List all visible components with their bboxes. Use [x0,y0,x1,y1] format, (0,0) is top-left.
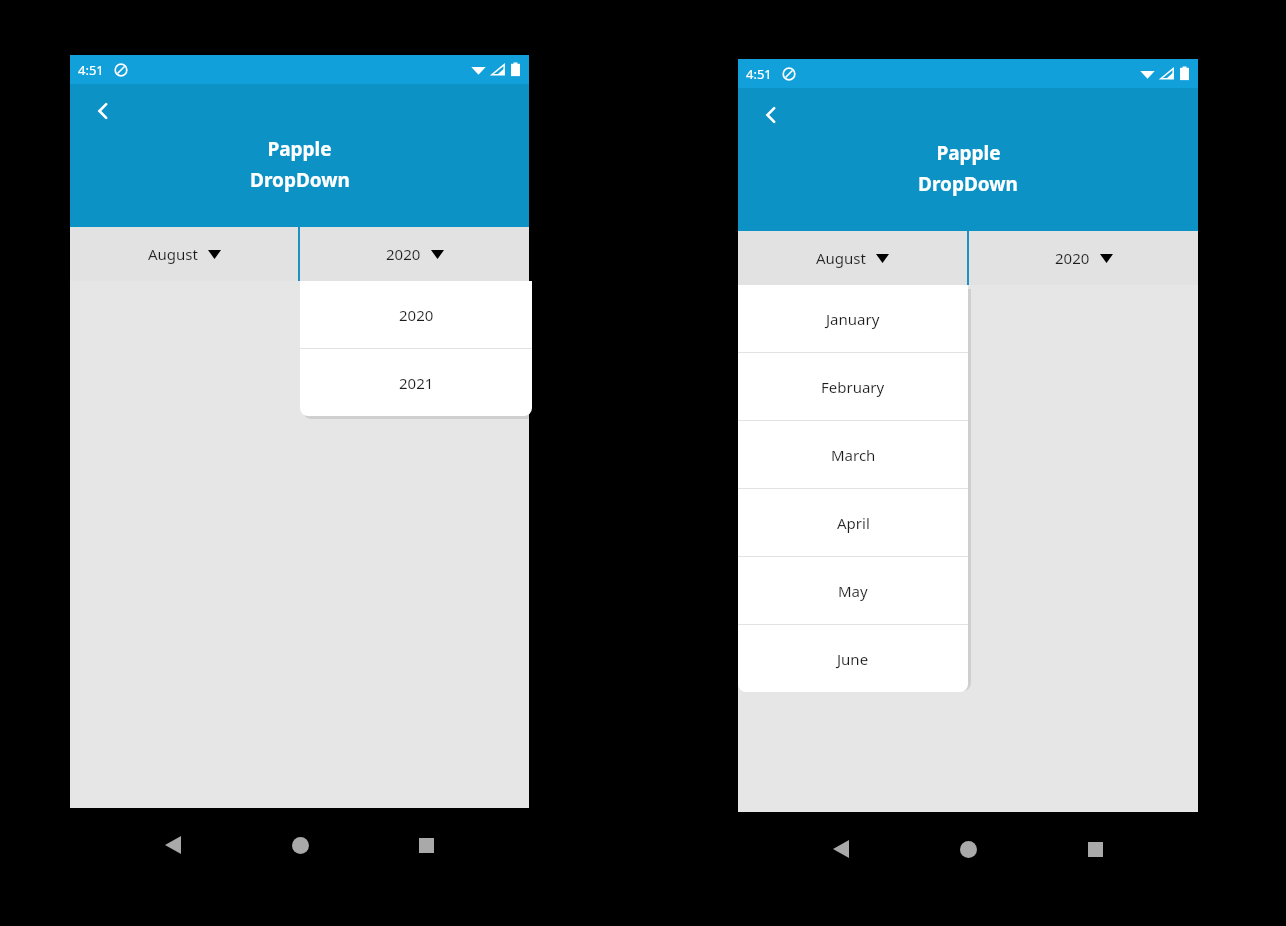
button[interactable]: Home [944,825,992,873]
button[interactable]: Back [149,821,197,869]
button[interactable]: August [738,231,967,285]
staticText: 2020 [386,244,421,264]
staticText: DropDown [250,167,350,193]
staticText: June [837,649,869,669]
staticText: May [838,581,868,601]
staticText: April [837,513,870,533]
staticText: 2021 [399,373,434,393]
staticText: 2020 [1055,248,1090,268]
staticText: March [831,445,876,465]
button[interactable]: Back [82,90,124,132]
button[interactable]: April [738,489,968,556]
staticText: August [816,248,866,268]
staticText: August [148,244,198,264]
staticText: January [826,309,880,329]
button[interactable]: 2021 [300,349,532,416]
button[interactable]: February [738,353,968,420]
button[interactable]: August [70,227,298,281]
button[interactable]: 2020 [969,231,1198,285]
staticText: 2020 [399,305,434,325]
button[interactable]: 2020 [300,227,529,281]
button[interactable]: Recent apps [402,821,450,869]
staticText: Papple [936,140,1001,166]
staticText: Papple [267,136,332,162]
button[interactable]: Home [276,821,324,869]
staticText: February [821,377,885,397]
button[interactable]: 2020 [300,281,532,348]
button[interactable]: Back [817,825,865,873]
staticText: 4:51 [746,65,772,83]
staticText: 4:51 [78,61,104,79]
button[interactable]: Back [750,94,792,136]
staticText: DropDown [918,171,1018,197]
button[interactable]: January [738,285,968,352]
button[interactable]: Recent apps [1071,825,1119,873]
button[interactable]: June [738,625,968,692]
button[interactable]: March [738,421,968,488]
button[interactable]: May [738,557,968,624]
